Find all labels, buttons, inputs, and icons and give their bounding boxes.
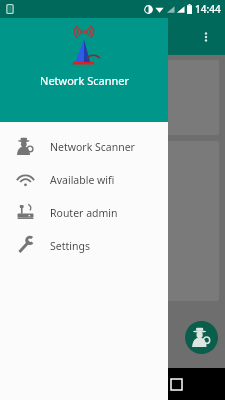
staticText: Network Scanner <box>40 73 129 88</box>
staticText: HOME_ALEX <box>16 68 74 82</box>
button[interactable]: Network Scanner <box>0 130 168 163</box>
button[interactable]: Available wifi <box>0 163 168 196</box>
button[interactable]: Settings <box>0 229 168 262</box>
button[interactable]: More options <box>193 24 219 50</box>
button[interactable]: HOME_ALEX <box>6 60 219 135</box>
button[interactable] <box>6 141 219 301</box>
button[interactable]: Recent apps <box>161 369 191 399</box>
button[interactable]: Scan network <box>185 321 218 354</box>
staticText: 14:44 <box>195 2 221 16</box>
staticText: Settings <box>50 239 90 253</box>
staticText: Router admin <box>50 206 118 220</box>
staticText: Available wifi <box>50 173 115 187</box>
staticText: Network Scanner <box>50 140 135 154</box>
staticText: 192.168.0.1 <box>16 114 70 128</box>
button[interactable]: Router admin <box>0 196 168 229</box>
